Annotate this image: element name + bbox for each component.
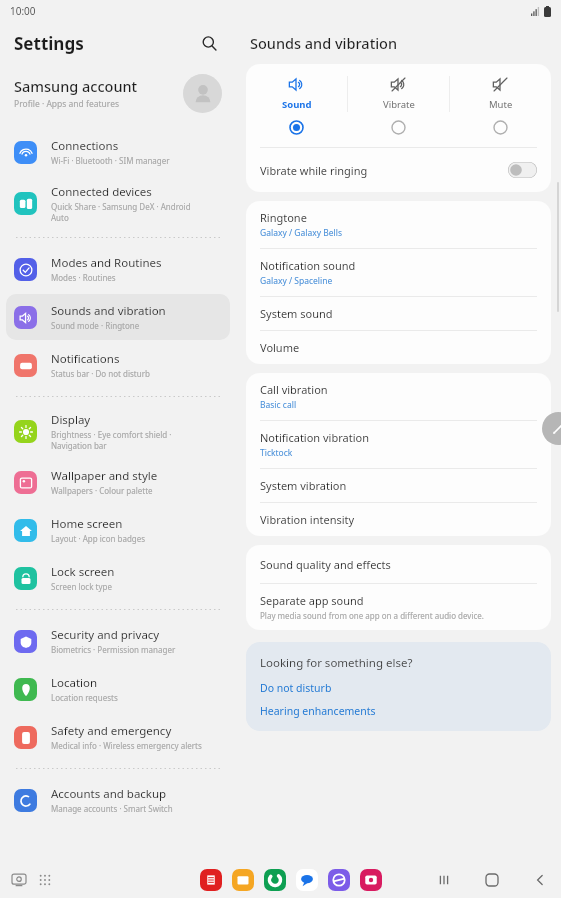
staticText: Profile · Apps and features bbox=[14, 98, 120, 110]
button[interactable]: Location bbox=[6, 666, 230, 712]
button[interactable]: System sound bbox=[246, 297, 551, 330]
button[interactable]: Vibration intensity bbox=[246, 503, 551, 536]
staticText: Basic call bbox=[260, 399, 297, 411]
staticText: Security and privacy bbox=[51, 627, 160, 643]
button[interactable]: Hearing enhancements bbox=[260, 704, 376, 718]
staticText: Status bar · Do not disturb bbox=[51, 368, 150, 379]
button[interactable]: camera bbox=[360, 869, 382, 891]
staticText: 10:00 bbox=[10, 4, 36, 18]
staticText: Location requests bbox=[51, 692, 118, 703]
button[interactable]: Sound bbox=[246, 76, 347, 135]
staticText: Connected devices bbox=[51, 184, 152, 200]
staticText: System sound bbox=[260, 306, 333, 321]
button[interactable]: Home screen bbox=[6, 507, 230, 553]
staticText: Lock screen bbox=[51, 564, 115, 580]
staticText: Ringtone bbox=[260, 210, 307, 225]
staticText: Sounds and vibration bbox=[250, 33, 398, 53]
button[interactable]: Ringtone bbox=[246, 201, 551, 248]
staticText: Modes and Routines bbox=[51, 255, 162, 271]
staticText: Sound mode · Ringtone bbox=[51, 320, 140, 331]
staticText: Vibrate bbox=[383, 98, 415, 111]
staticText: Mute bbox=[489, 98, 513, 111]
button[interactable]: Connections bbox=[6, 129, 230, 175]
staticText: Galaxy / Spaceline bbox=[260, 275, 333, 287]
button[interactable]: Vibrate while ringing toggle bbox=[508, 162, 537, 178]
staticText: Home screen bbox=[51, 516, 123, 532]
staticText: Display bbox=[51, 412, 91, 428]
staticText: Accounts and backup bbox=[51, 786, 167, 802]
staticText: Volume bbox=[260, 340, 300, 355]
button[interactable]: Vibrate while ringing bbox=[246, 148, 551, 192]
staticText: Sounds and vibration bbox=[51, 303, 166, 319]
staticText: Notification sound bbox=[260, 258, 356, 273]
button[interactable]: Do not disturb bbox=[260, 681, 332, 695]
button[interactable]: phone bbox=[264, 869, 286, 891]
staticText: Manage accounts · Smart Switch bbox=[51, 803, 173, 814]
button[interactable]: System vibration bbox=[246, 469, 551, 502]
staticText: Wallpaper and style bbox=[51, 468, 158, 484]
button[interactable]: Security and privacy bbox=[6, 618, 230, 664]
staticText: Safety and emergency bbox=[51, 723, 172, 739]
staticText: Do not disturb bbox=[260, 681, 332, 695]
button[interactable]: Wallpaper and style bbox=[6, 459, 230, 505]
button[interactable]: Recent apps bbox=[6, 867, 32, 893]
staticText: Looking for something else? bbox=[260, 655, 413, 671]
staticText: System vibration bbox=[260, 478, 347, 493]
button[interactable]: Sound quality and effects bbox=[246, 545, 551, 583]
staticText: Vibration intensity bbox=[260, 512, 355, 527]
button[interactable]: Notification sound bbox=[246, 249, 551, 296]
staticText: Settings bbox=[14, 32, 84, 55]
button[interactable]: Notifications bbox=[6, 342, 230, 388]
staticText: Ticktock bbox=[260, 447, 293, 459]
staticText: Play media sound from one app on a diffe… bbox=[260, 610, 484, 621]
button[interactable]: Search bbox=[194, 28, 224, 58]
staticText: Notifications bbox=[51, 351, 120, 367]
button[interactable]: Back bbox=[527, 867, 553, 893]
button[interactable]: Display bbox=[6, 405, 230, 457]
staticText: Quick Share · Samsung DeX · Android Auto bbox=[51, 201, 191, 223]
staticText: Notification vibration bbox=[260, 430, 369, 445]
staticText: Sound quality and effects bbox=[260, 557, 391, 572]
staticText: Call vibration bbox=[260, 382, 328, 397]
staticText: Medical info · Wireless emergency alerts bbox=[51, 740, 202, 751]
staticText: Sound bbox=[282, 98, 312, 111]
button[interactable]: Samsung account bbox=[0, 64, 236, 122]
button[interactable]: Recents bbox=[431, 867, 457, 893]
staticText: Galaxy / Galaxy Bells bbox=[260, 227, 343, 239]
button[interactable]: Safety and emergency bbox=[6, 714, 230, 760]
staticText: Connections bbox=[51, 138, 119, 154]
button[interactable]: Lock screen bbox=[6, 555, 230, 601]
button[interactable]: internet bbox=[328, 869, 350, 891]
button[interactable]: messages bbox=[296, 869, 318, 891]
button[interactable]: Notification vibration bbox=[246, 421, 551, 468]
button[interactable]: notes bbox=[200, 869, 222, 891]
button[interactable]: Mute bbox=[450, 76, 551, 135]
button[interactable]: Vibrate bbox=[348, 76, 449, 135]
button[interactable]: Separate app sound bbox=[246, 584, 551, 630]
button[interactable]: Apps bbox=[32, 867, 58, 893]
staticText: Location bbox=[51, 675, 98, 691]
button[interactable]: Edit bbox=[542, 412, 561, 445]
staticText: Samsung account bbox=[14, 76, 138, 96]
button[interactable]: Home bbox=[479, 867, 505, 893]
button[interactable]: files bbox=[232, 869, 254, 891]
staticText: Wi-Fi · Bluetooth · SIM manager bbox=[51, 155, 170, 166]
button[interactable]: Accounts and backup bbox=[6, 777, 230, 823]
staticText: Separate app sound bbox=[260, 593, 364, 608]
button[interactable]: Volume bbox=[246, 331, 551, 364]
button[interactable]: Connected devices bbox=[6, 177, 230, 229]
button[interactable]: Call vibration bbox=[246, 373, 551, 420]
staticText: Modes · Routines bbox=[51, 272, 116, 283]
staticText: Layout · App icon badges bbox=[51, 533, 146, 544]
staticText: Vibrate while ringing bbox=[260, 163, 508, 178]
button[interactable]: Sounds and vibration bbox=[6, 294, 230, 340]
staticText: Biometrics · Permission manager bbox=[51, 644, 176, 655]
staticText: Hearing enhancements bbox=[260, 704, 376, 718]
staticText: Wallpapers · Colour palette bbox=[51, 485, 153, 496]
staticText: Screen lock type bbox=[51, 581, 112, 592]
button[interactable]: Modes and Routines bbox=[6, 246, 230, 292]
staticText: Brightness · Eye comfort shield · Naviga… bbox=[51, 429, 172, 451]
